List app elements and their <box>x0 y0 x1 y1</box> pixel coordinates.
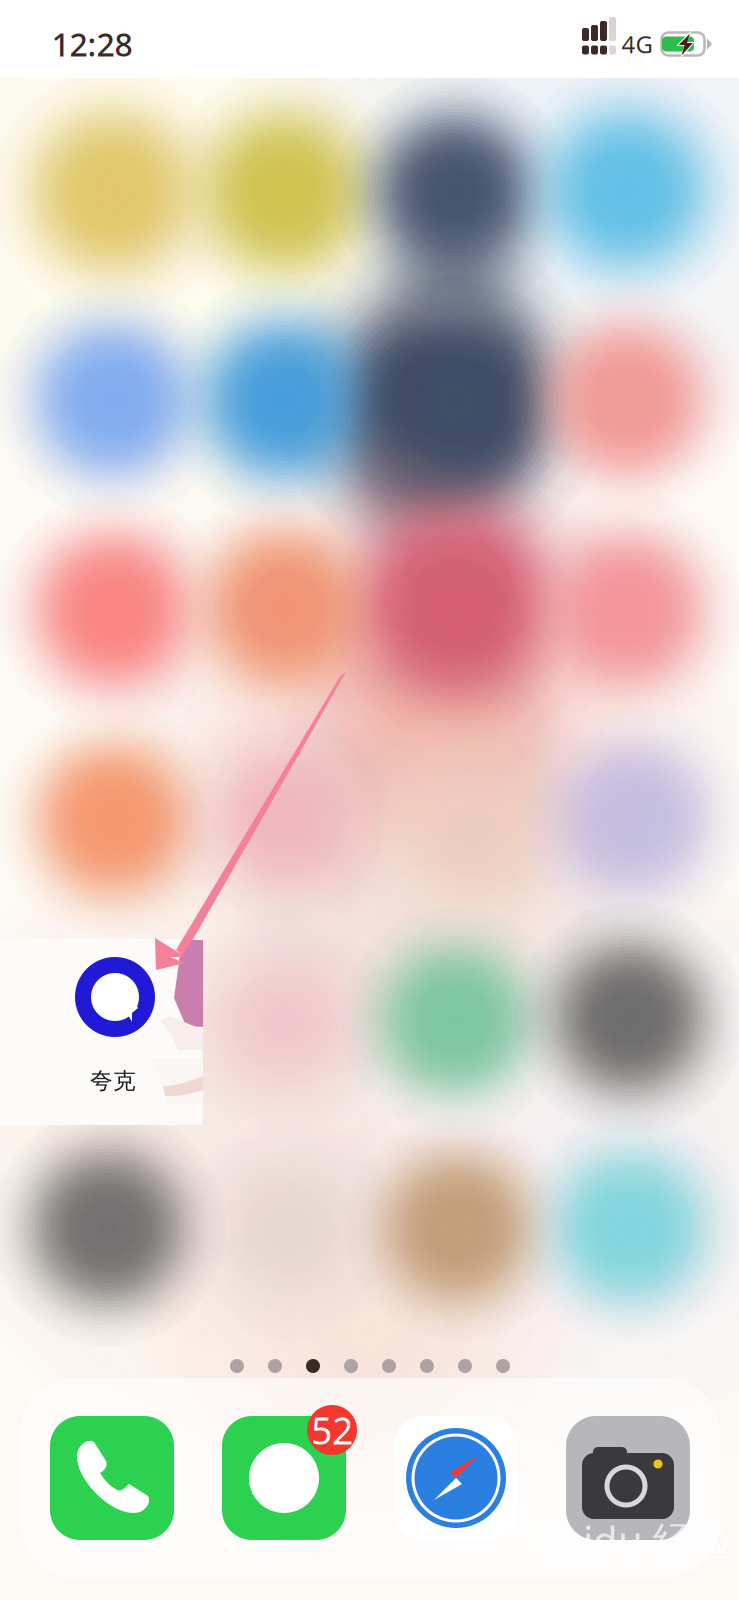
button[interactable]: Safari <box>394 1416 518 1540</box>
staticText: 52 <box>311 1405 353 1455</box>
button[interactable]: Camera <box>566 1416 690 1540</box>
button[interactable]: 夸克 <box>0 0 739 1600</box>
staticText: 4G <box>621 28 652 60</box>
button[interactable]: Phone <box>50 1416 174 1540</box>
staticText: 夸克 <box>90 1067 136 1095</box>
staticText: 12:28 <box>51 23 132 65</box>
button[interactable]: Messages <box>222 1416 346 1540</box>
staticText: Baidu 经验 <box>535 1513 733 1567</box>
